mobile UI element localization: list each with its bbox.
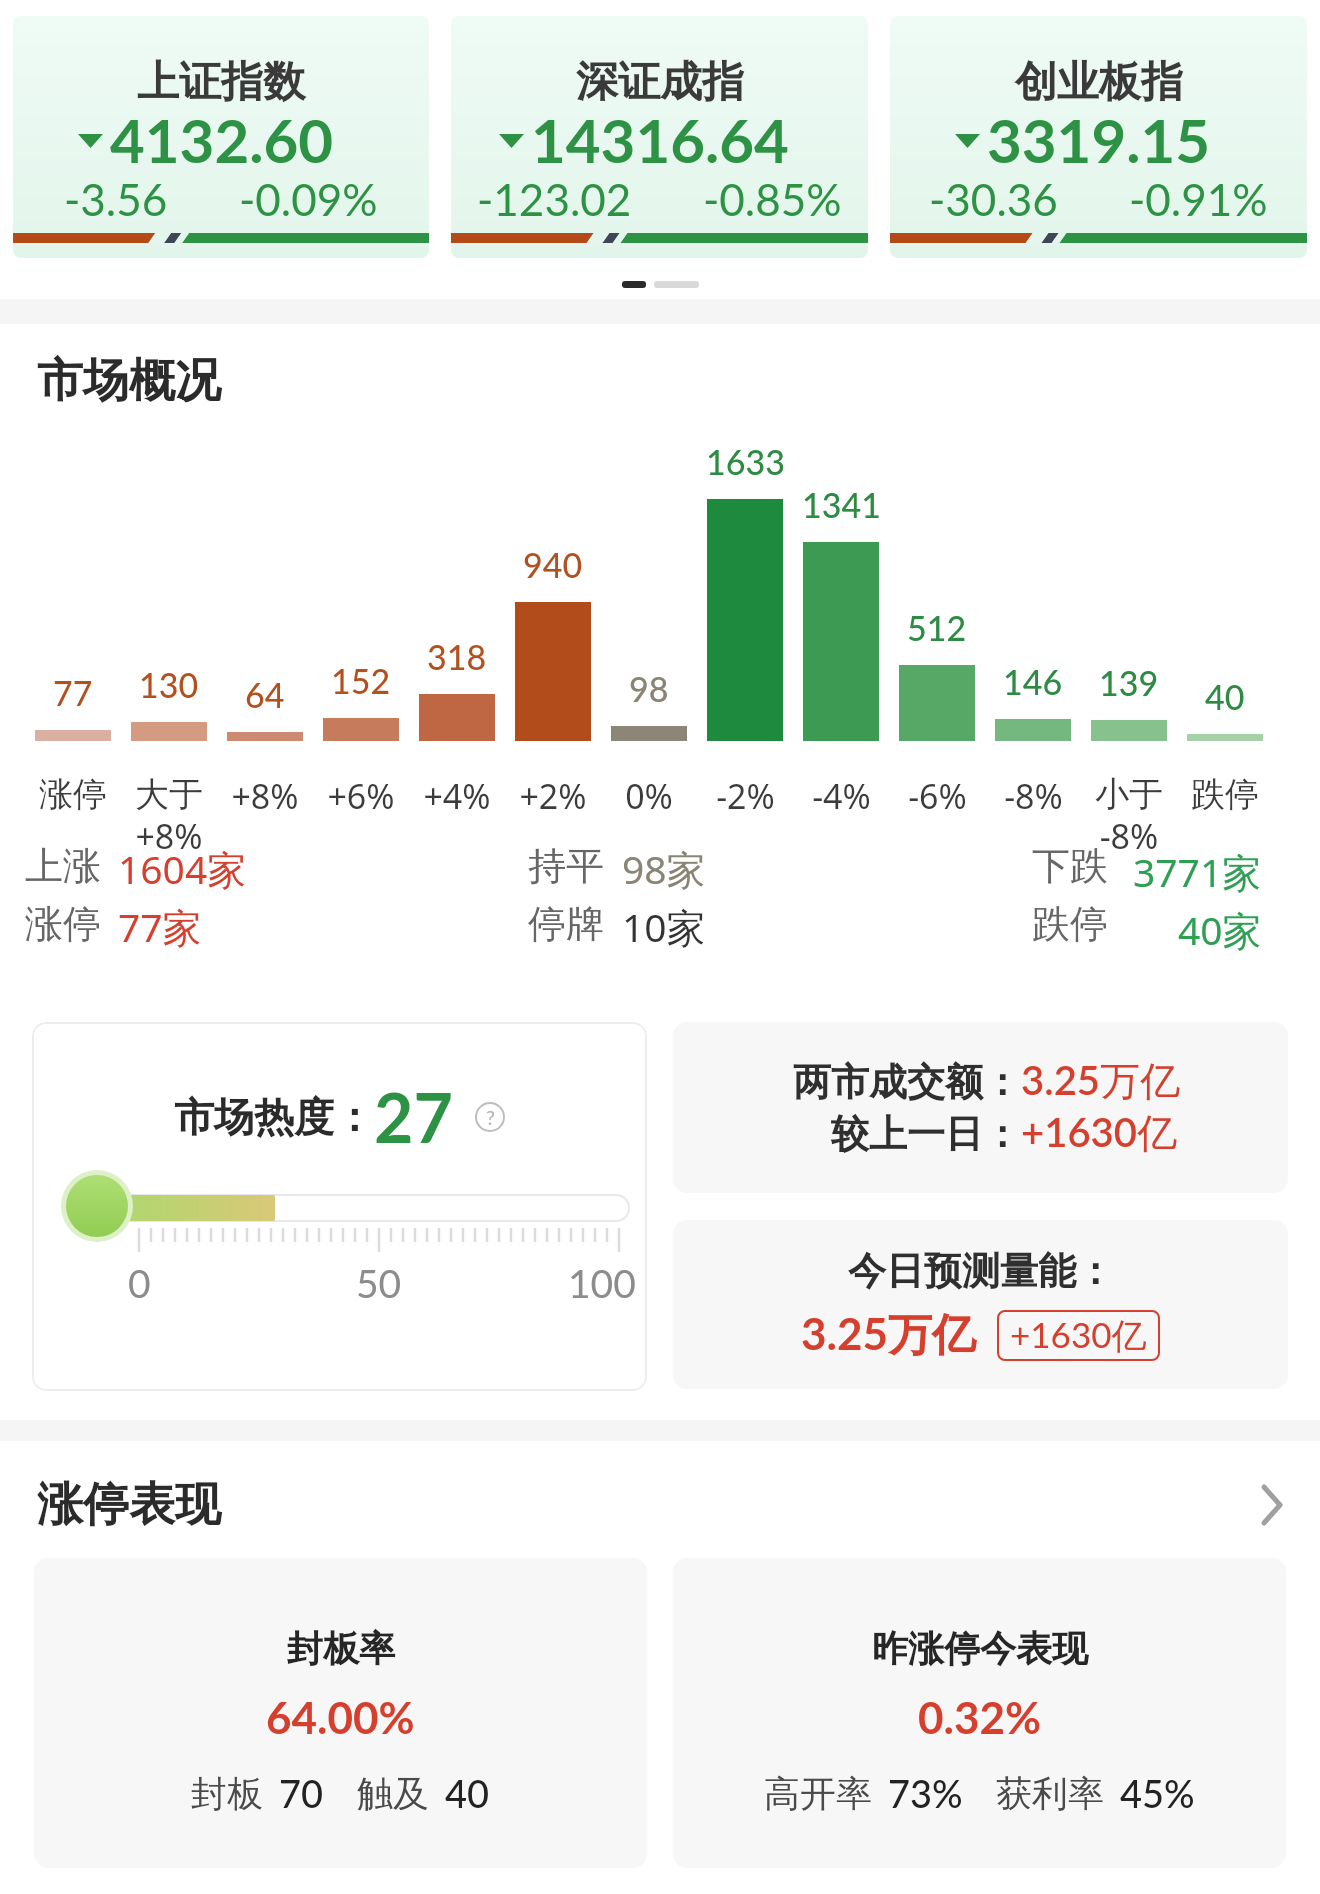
staticText: 市场热度：: [174, 1092, 374, 1142]
staticText: -2%: [716, 773, 775, 819]
staticText: -123.02: [477, 173, 632, 226]
staticText: 0%: [625, 773, 673, 819]
staticText: +1630亿: [1010, 1313, 1147, 1358]
staticText: 高开率: [764, 1771, 872, 1816]
staticText: 152: [331, 660, 391, 701]
staticText: 100: [568, 1260, 636, 1307]
staticText: 0: [128, 1260, 151, 1307]
staticText: 3319.15: [987, 104, 1211, 176]
staticText: 139: [1099, 662, 1159, 703]
staticText: -0.85%: [703, 173, 842, 226]
staticText: 上涨: [25, 842, 101, 890]
staticText: 两市成交额：: [793, 1058, 1021, 1106]
staticText: 深证成指: [576, 56, 744, 109]
staticText: 获利率: [996, 1771, 1104, 1816]
staticText: 50: [356, 1260, 402, 1307]
staticText: 77家: [118, 900, 202, 953]
button[interactable]: 两市成交额：: [673, 1022, 1288, 1193]
staticText: 跌停: [1032, 900, 1108, 948]
staticText: 触及: [357, 1771, 429, 1816]
staticText: 14316.64: [531, 104, 789, 176]
staticText: 40: [1205, 676, 1245, 717]
staticText: -3.56: [64, 173, 168, 226]
staticText: 涨停: [39, 773, 107, 816]
staticText: 64.00%: [266, 1691, 415, 1744]
staticText: +1630亿: [1021, 1108, 1177, 1159]
staticText: 1341: [802, 484, 881, 525]
staticText: 今日预测量能：: [848, 1247, 1114, 1295]
button[interactable]: 封板率: [34, 1558, 647, 1868]
staticText: 封板: [191, 1771, 263, 1816]
staticText: 98家: [622, 842, 706, 895]
staticText: 70: [279, 1770, 324, 1816]
staticText: 封板率: [287, 1626, 395, 1671]
staticText: 1604家: [118, 842, 247, 895]
staticText: 98: [629, 668, 669, 709]
staticText: -0.91%: [1129, 173, 1268, 226]
button[interactable]: 涨停表现: [0, 1476, 1320, 1534]
staticText: +4%: [423, 773, 491, 819]
staticText: 持平: [528, 842, 604, 890]
staticText: ?: [486, 1105, 495, 1129]
staticText: 小于 -8%: [1095, 773, 1163, 859]
staticText: 146: [1003, 661, 1063, 702]
staticText: 下跌: [1032, 842, 1108, 890]
staticText: 4132.60: [110, 104, 334, 176]
staticText: 停牌: [528, 900, 604, 948]
staticText: -8%: [1004, 773, 1063, 819]
staticText: +6%: [327, 773, 395, 819]
staticText: 大于 +8%: [135, 773, 203, 859]
staticText: 73%: [888, 1770, 963, 1816]
staticText: 3771家: [1133, 845, 1262, 898]
staticText: 318: [427, 636, 487, 677]
button[interactable]: 市场热度：: [32, 1022, 647, 1391]
staticText: 昨涨停今表现: [872, 1626, 1088, 1671]
button[interactable]: 昨涨停今表现: [673, 1558, 1286, 1868]
staticText: 3.25万亿: [1021, 1056, 1181, 1107]
staticText: 1633: [706, 441, 785, 482]
staticText: -0.09%: [239, 173, 378, 226]
staticText: -4%: [812, 773, 871, 819]
staticText: 27: [374, 1076, 453, 1158]
staticText: -6%: [908, 773, 967, 819]
staticText: 40家: [1178, 903, 1262, 956]
button[interactable]: 上证指数: [13, 16, 429, 258]
button[interactable]: 今日预测量能：: [673, 1220, 1288, 1389]
staticText: 40: [445, 1770, 490, 1816]
staticText: +8%: [231, 773, 299, 819]
staticText: 45%: [1120, 1770, 1195, 1816]
staticText: 130: [139, 664, 199, 705]
staticText: 涨停表现: [37, 1476, 221, 1534]
staticText: 跌停: [1191, 773, 1259, 816]
staticText: 940: [523, 544, 583, 585]
staticText: 77: [53, 672, 93, 713]
staticText: 上证指数: [137, 56, 305, 109]
staticText: 3.25万亿: [801, 1307, 977, 1363]
staticText: 涨停: [25, 900, 101, 948]
staticText: 512: [907, 607, 967, 648]
staticText: 市场概况: [37, 352, 221, 410]
staticText: 0.32%: [918, 1691, 1042, 1744]
staticText: -30.36: [929, 173, 1058, 226]
staticText: +2%: [519, 773, 587, 819]
button[interactable]: 创业板指: [890, 16, 1307, 258]
button[interactable]: 深证成指: [451, 16, 868, 258]
staticText: 创业板指: [1015, 56, 1183, 109]
staticText: 64: [245, 674, 285, 715]
staticText: 较上一日：: [831, 1110, 1021, 1158]
staticText: 10家: [622, 900, 706, 953]
